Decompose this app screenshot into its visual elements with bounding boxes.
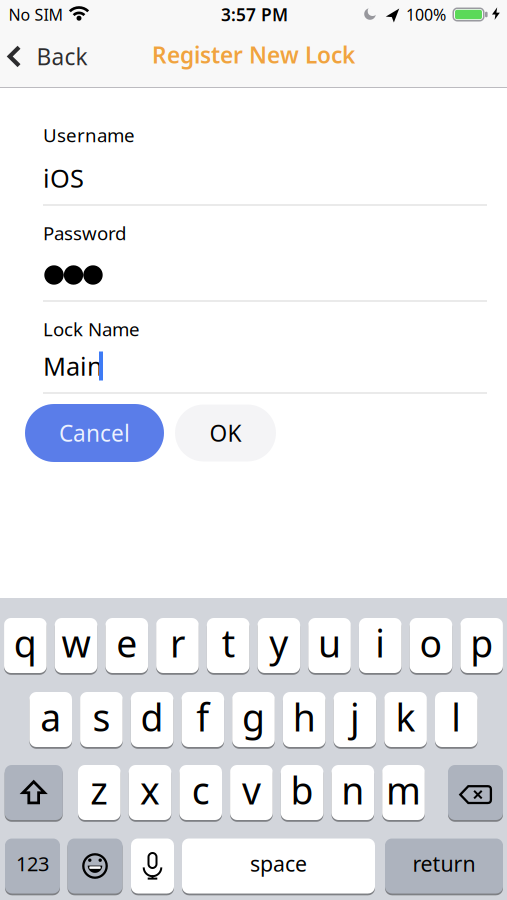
staticText: j <box>350 692 360 742</box>
staticText: Cancel <box>59 418 130 448</box>
button[interactable]: Delete <box>448 764 503 821</box>
staticText: OK <box>209 418 241 448</box>
button[interactable]: Dictate <box>131 837 174 894</box>
button[interactable]: a <box>29 691 72 748</box>
staticText: 100% <box>406 4 446 25</box>
button[interactable]: return <box>385 837 503 894</box>
staticText: Back <box>36 41 87 71</box>
button[interactable]: d <box>131 691 173 748</box>
staticText: Lock Name <box>43 317 140 341</box>
button[interactable]: OK <box>175 404 276 461</box>
button[interactable]: Shift <box>5 764 63 821</box>
staticText: z <box>90 765 108 815</box>
staticText: c <box>192 765 210 815</box>
button[interactable]: space <box>182 837 375 894</box>
staticText: i <box>375 618 385 668</box>
button[interactable]: x <box>129 764 171 821</box>
button[interactable]: o <box>410 617 452 674</box>
staticText: y <box>269 618 288 668</box>
staticText: w <box>61 618 90 668</box>
button[interactable]: Back <box>7 34 87 78</box>
button[interactable]: Emoji <box>67 837 122 894</box>
staticText: h <box>293 692 316 742</box>
button[interactable]: Password <box>43 250 487 302</box>
button[interactable]: m <box>382 764 425 821</box>
button[interactable]: h <box>283 691 325 748</box>
staticText: s <box>92 692 110 742</box>
staticText: 123 <box>16 850 49 877</box>
staticText: space <box>250 849 307 878</box>
button[interactable]: l <box>435 691 478 748</box>
button[interactable]: 123 <box>5 837 60 894</box>
staticText: n <box>341 765 364 815</box>
button[interactable]: f <box>181 691 224 748</box>
staticText: Username <box>43 123 135 147</box>
staticText: Register New Lock <box>152 40 355 70</box>
staticText: t <box>222 618 235 668</box>
staticText: return <box>412 849 475 878</box>
button[interactable]: t <box>207 617 249 674</box>
button[interactable]: iOS <box>43 150 487 207</box>
button[interactable]: Main <box>43 340 487 394</box>
staticText: e <box>116 618 137 668</box>
button[interactable]: y <box>258 617 300 674</box>
staticText: l <box>451 692 461 742</box>
staticText: r <box>170 618 185 668</box>
staticText: 3:57 PM <box>221 3 288 26</box>
button[interactable]: n <box>331 764 374 821</box>
button[interactable]: p <box>460 617 503 674</box>
staticText: iOS <box>43 161 84 195</box>
staticText: a <box>40 692 61 742</box>
button[interactable]: w <box>55 617 97 674</box>
staticText: f <box>196 692 209 742</box>
staticText: p <box>470 618 493 668</box>
button[interactable]: u <box>308 617 351 674</box>
staticText: v <box>242 765 261 815</box>
staticText: g <box>242 692 265 742</box>
staticText: x <box>140 765 160 815</box>
button[interactable]: r <box>156 617 199 674</box>
button[interactable]: b <box>281 764 323 821</box>
staticText: q <box>14 618 37 668</box>
staticText: k <box>396 692 416 742</box>
staticText: No SIM <box>8 4 63 25</box>
staticText: Password <box>43 221 126 245</box>
button[interactable]: j <box>334 691 376 748</box>
staticText: m <box>386 765 421 815</box>
button[interactable]: e <box>105 617 148 674</box>
button[interactable]: q <box>4 617 47 674</box>
button[interactable]: s <box>80 691 123 748</box>
button[interactable]: v <box>230 764 273 821</box>
staticText: o <box>419 618 442 668</box>
button[interactable]: z <box>78 764 121 821</box>
button[interactable]: c <box>179 764 222 821</box>
button[interactable]: i <box>359 617 402 674</box>
button[interactable]: Cancel <box>25 404 164 462</box>
button[interactable]: k <box>384 691 427 748</box>
staticText: b <box>291 765 314 815</box>
staticText: d <box>141 692 164 742</box>
button[interactable]: g <box>232 691 275 748</box>
staticText: u <box>318 618 341 668</box>
staticText: Main <box>43 349 103 383</box>
